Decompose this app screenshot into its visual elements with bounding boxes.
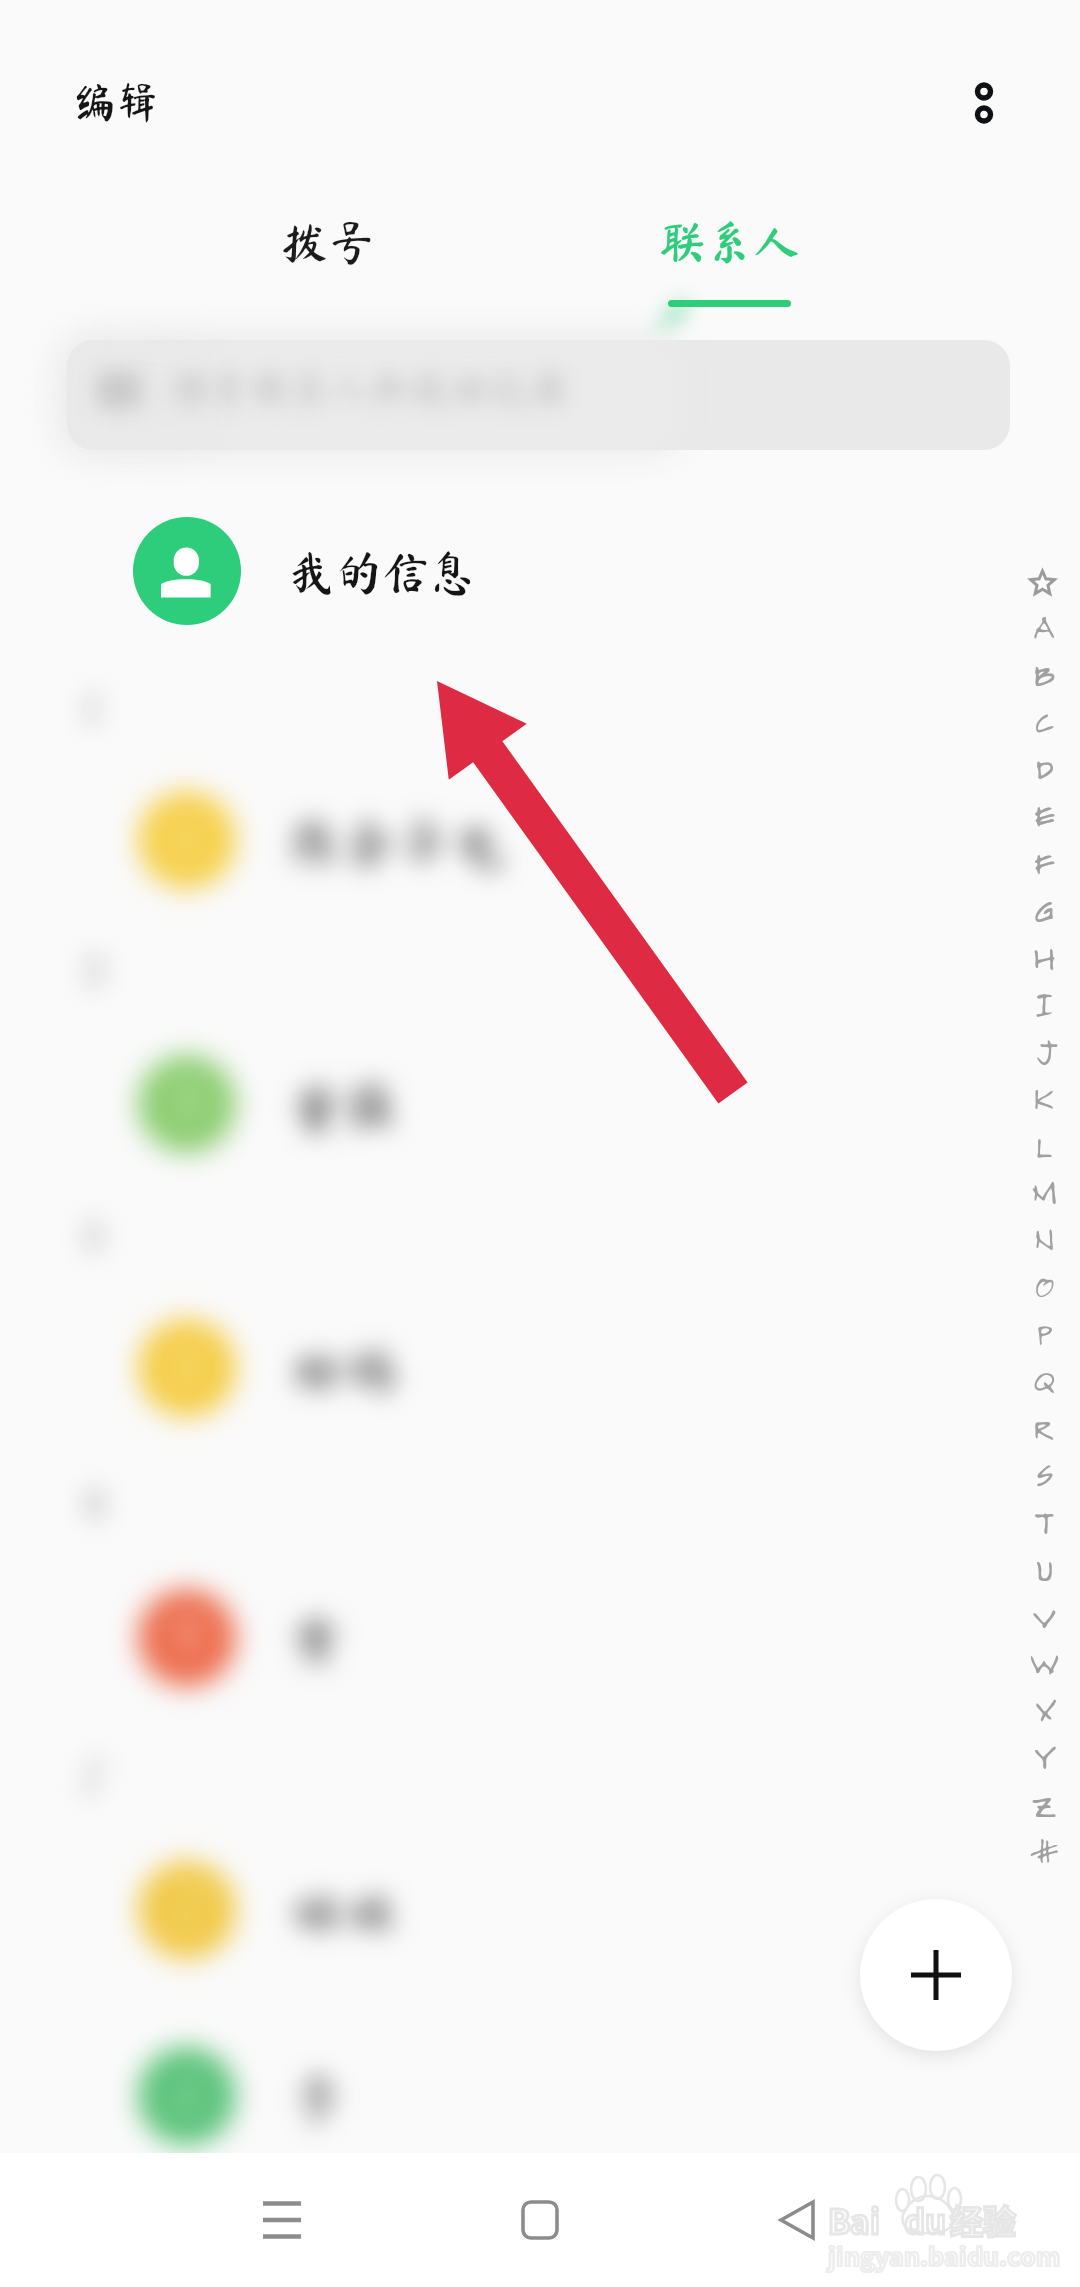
staticText: 联系人: [659, 218, 800, 265]
staticText: N: [1017, 1215, 1069, 1259]
button[interactable]: 拨号: [228, 219, 428, 329]
staticText: Q: [1017, 1357, 1069, 1401]
staticText: C: [1017, 697, 1069, 741]
button[interactable]: 编辑: [55, 66, 177, 137]
staticText: 拨号: [281, 219, 375, 266]
staticText: #: [1017, 1828, 1069, 1872]
button[interactable]: Add contact: [860, 1899, 1012, 2051]
staticText: U: [1017, 1545, 1069, 1589]
staticText: B: [1017, 650, 1069, 694]
staticText: O: [1017, 1262, 1069, 1306]
staticText: D: [1017, 744, 1069, 788]
staticText: Y: [1017, 1733, 1069, 1777]
staticText: T: [1017, 1498, 1069, 1542]
staticText: E: [1017, 791, 1069, 835]
staticText: M: [1017, 1168, 1069, 1212]
button[interactable]: 我的信息: [0, 488, 1080, 656]
staticText: H: [1017, 933, 1069, 977]
button[interactable]: 联系人: [629, 218, 829, 328]
button[interactable]: Home: [480, 2160, 600, 2280]
staticText: F: [1017, 839, 1069, 883]
button[interactable]: Contact: [0, 760, 1004, 920]
staticText: Z: [1017, 1781, 1069, 1825]
staticText: 我的信息: [288, 549, 476, 596]
button[interactable]: Contact: [0, 2016, 1004, 2176]
staticText: J: [1017, 1027, 1069, 1071]
button[interactable]: Contact: [0, 1558, 1004, 1718]
button[interactable]: Recent apps: [222, 2160, 342, 2280]
button[interactable]: Alphabet index: [1017, 558, 1069, 1888]
staticText: 编辑: [73, 80, 159, 123]
staticText: K: [1017, 1074, 1069, 1118]
staticText: W: [1017, 1639, 1069, 1683]
staticText: X: [1017, 1686, 1069, 1730]
staticText: S: [1017, 1451, 1069, 1495]
staticText: R: [1017, 1404, 1069, 1448]
staticText: I: [1017, 980, 1069, 1024]
button[interactable]: More options: [948, 67, 1020, 139]
button[interactable]: Contact: [0, 1024, 1004, 1184]
staticText: L: [1017, 1121, 1069, 1165]
button[interactable]: Contact: [0, 1830, 1004, 1990]
button[interactable]: Search contacts: [67, 340, 1017, 450]
staticText: V: [1017, 1592, 1069, 1636]
staticText: G: [1017, 886, 1069, 930]
button[interactable]: Back: [740, 2160, 860, 2280]
staticText: A: [1017, 603, 1069, 647]
staticText: P: [1017, 1310, 1069, 1354]
button[interactable]: Contact: [0, 1288, 1004, 1448]
